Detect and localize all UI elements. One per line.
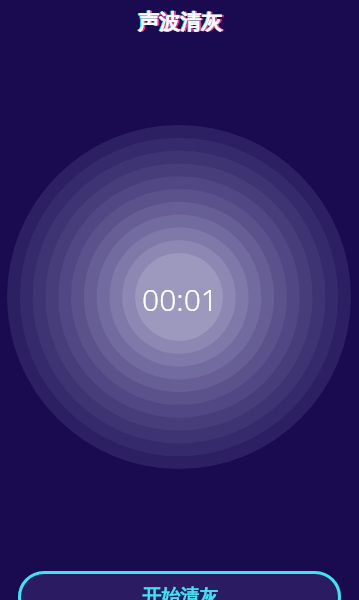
button[interactable]: 开始清灰	[18, 571, 341, 600]
staticText: 开始清灰	[142, 585, 218, 600]
staticText: 00:01	[142, 279, 218, 320]
staticText: 声波清灰	[137, 9, 221, 35]
staticText: 声波清灰	[138, 9, 222, 35]
staticText: 声波清灰	[140, 9, 224, 35]
